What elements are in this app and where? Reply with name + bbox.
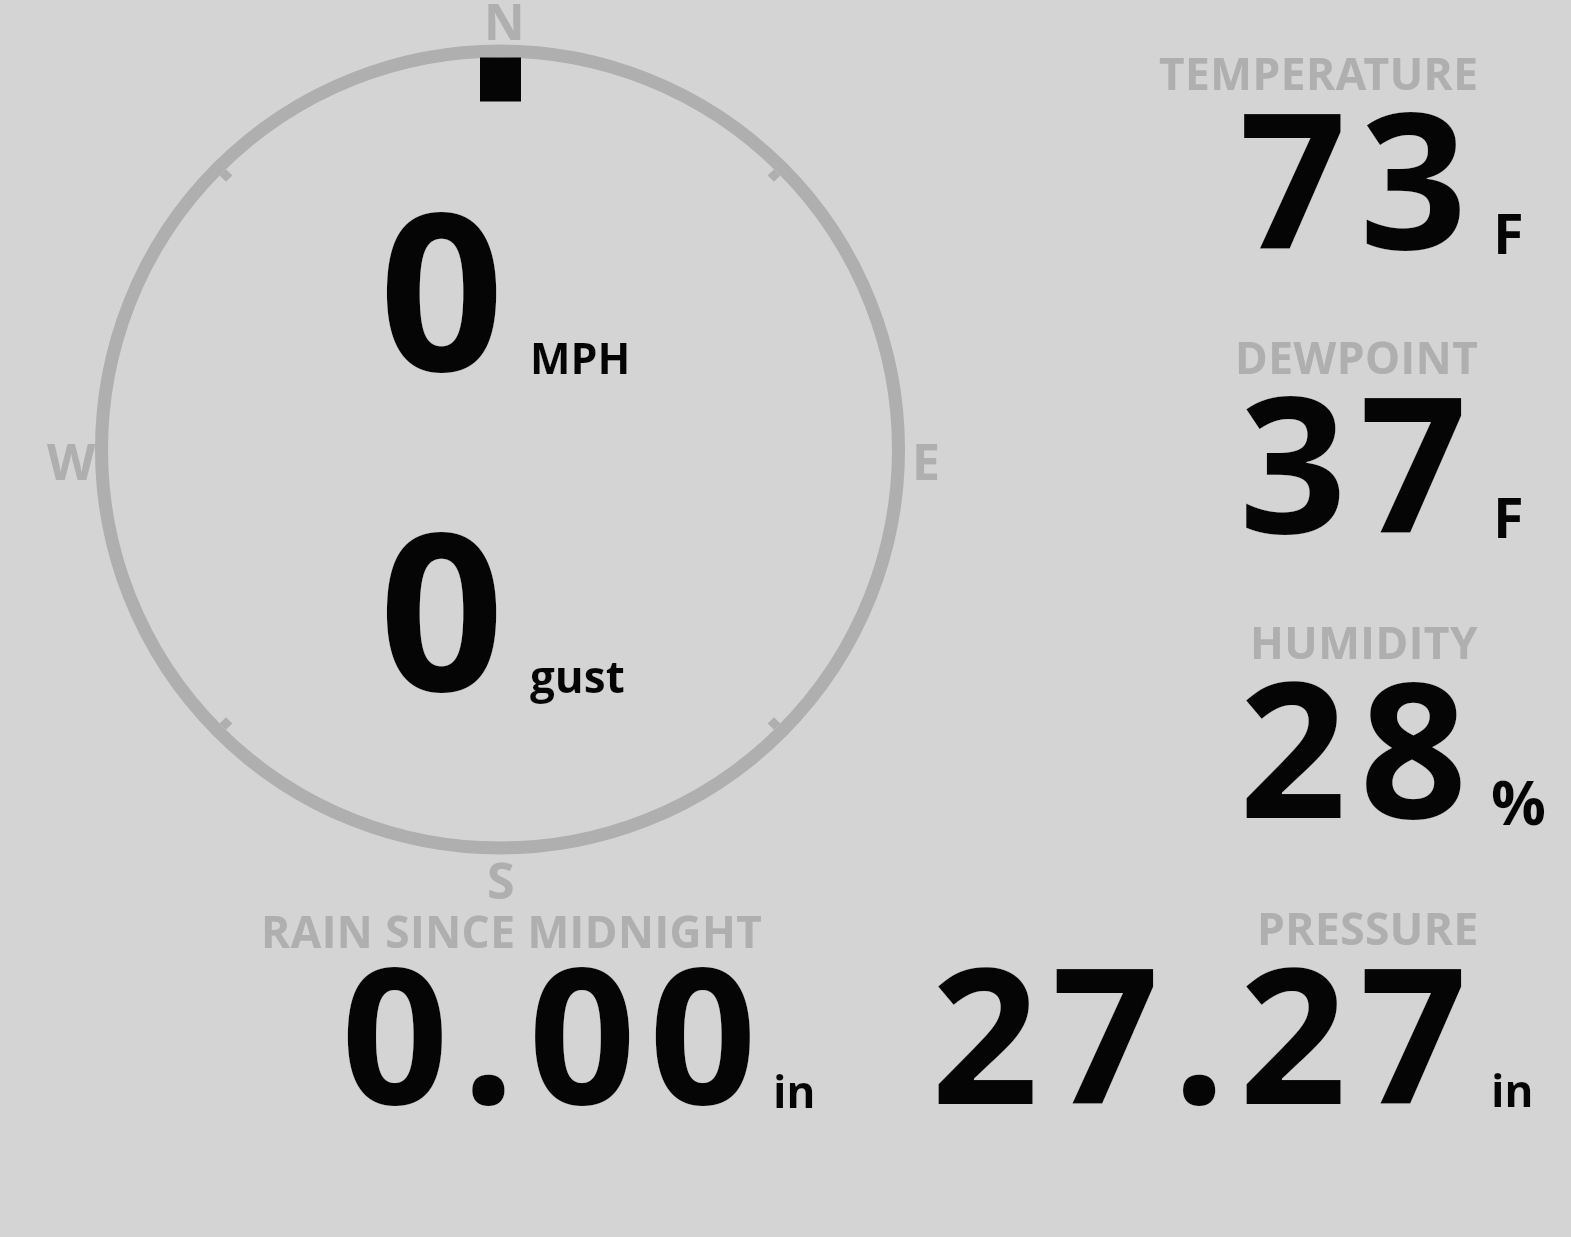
staticText: in bbox=[1491, 1060, 1534, 1120]
staticText: HUMIDITY bbox=[1250, 612, 1479, 672]
staticText: 27.27 bbox=[931, 903, 1481, 1160]
staticText: 73 bbox=[1239, 48, 1481, 305]
staticText: N bbox=[484, 0, 525, 55]
staticText: 28 bbox=[1239, 617, 1481, 874]
staticText: 0.00 bbox=[341, 903, 770, 1160]
staticText: gust bbox=[530, 646, 625, 706]
staticText: PRESSURE bbox=[1257, 898, 1479, 958]
button[interactable]: Wind direction dial bbox=[0, 0, 1571, 1237]
staticText: MPH bbox=[530, 328, 631, 387]
staticText: F bbox=[1493, 194, 1524, 270]
staticText: RAIN SINCE MIDNIGHT bbox=[261, 901, 763, 961]
staticText: 37 bbox=[1239, 332, 1481, 589]
staticText: S bbox=[487, 846, 515, 914]
staticText: % bbox=[1491, 760, 1546, 843]
staticText: TEMPERATURE bbox=[1159, 43, 1479, 103]
staticText: E bbox=[912, 427, 941, 495]
staticText: 0 bbox=[379, 457, 505, 755]
staticText: DEWPOINT bbox=[1235, 327, 1479, 387]
staticText: W bbox=[47, 427, 96, 495]
staticText: in bbox=[773, 1061, 816, 1121]
staticText: F bbox=[1493, 478, 1524, 554]
staticText: 0 bbox=[379, 137, 505, 435]
